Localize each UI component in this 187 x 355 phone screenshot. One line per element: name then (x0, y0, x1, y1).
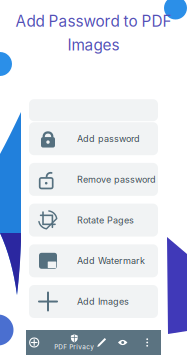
staticText: Add password (77, 133, 140, 144)
button[interactable]: Add Images (29, 285, 158, 318)
staticText: Images (67, 36, 119, 54)
staticText: Remove password (77, 174, 156, 185)
button[interactable]: More (137, 330, 157, 355)
button[interactable]: Remove password (29, 163, 158, 196)
staticText: PDF Privacy (54, 343, 94, 351)
staticText: Add Images (77, 296, 129, 307)
staticText: Add Password to PDF (15, 12, 171, 31)
button[interactable]: Edit (92, 330, 112, 355)
button[interactable]: Move (22, 330, 46, 355)
button[interactable]: PDF Privacy (54, 330, 94, 355)
button[interactable]: Add password (29, 122, 158, 155)
staticText: Add Watermark (77, 255, 145, 266)
button[interactable]: Preview (113, 330, 133, 355)
button[interactable]: Add Watermark (29, 244, 158, 277)
staticText: Rotate Pages (77, 215, 134, 226)
button[interactable]: Rotate Pages (29, 204, 158, 237)
